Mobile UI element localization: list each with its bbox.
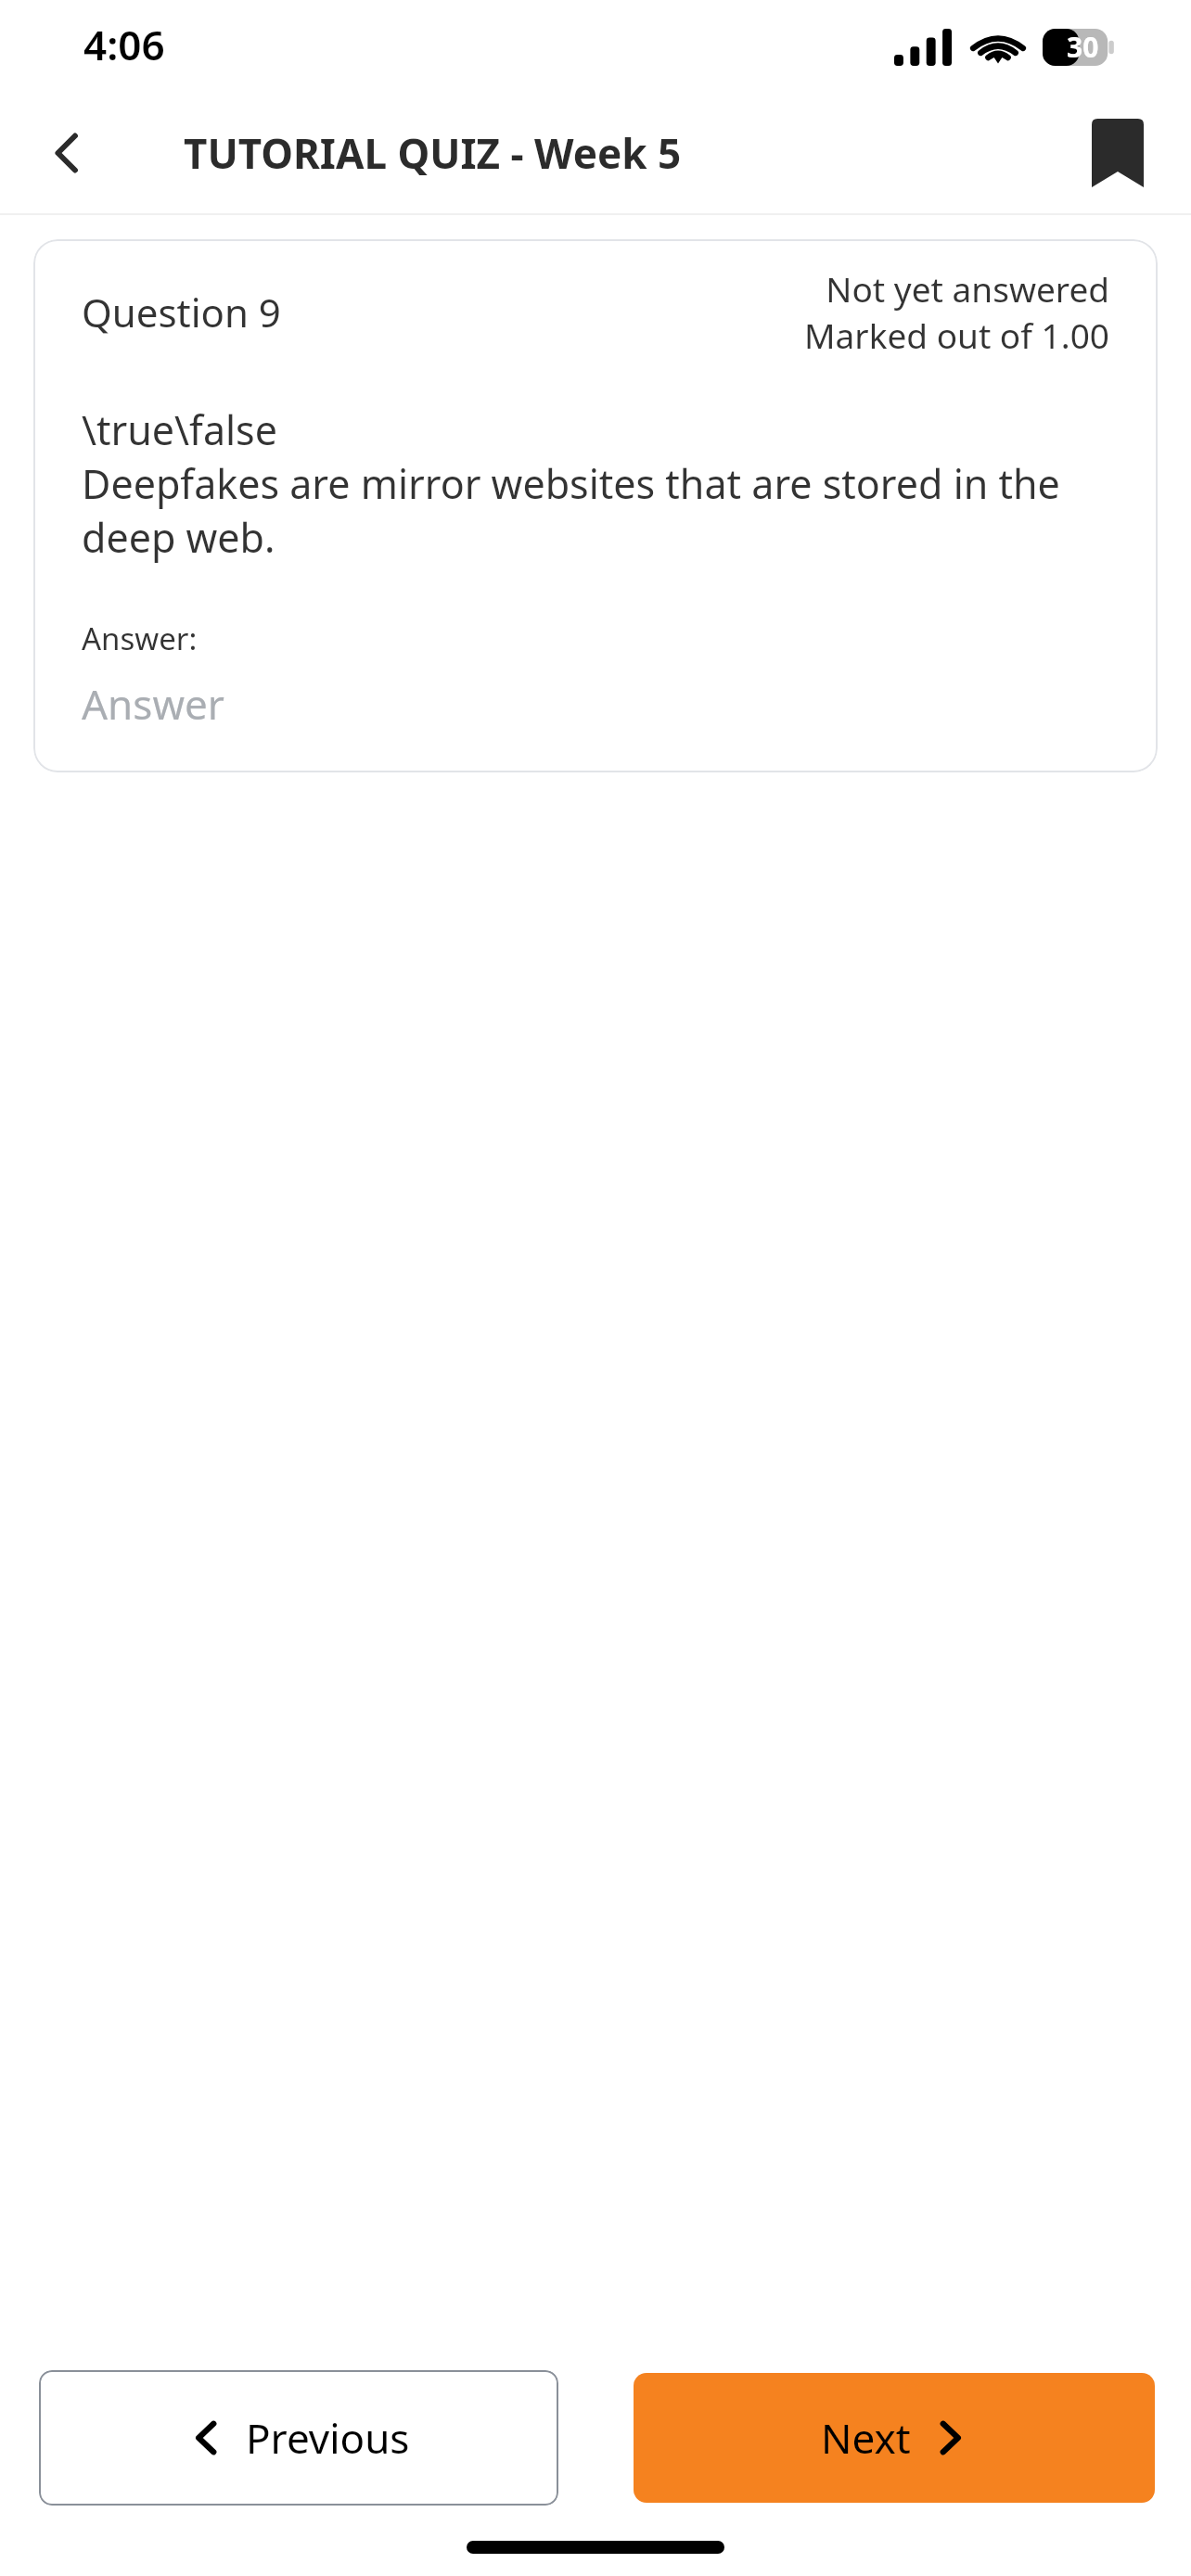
staticText: \true\false Deepfakes are mirror website…	[82, 402, 1117, 564]
staticText: Next	[821, 2410, 911, 2466]
button[interactable]: Previous	[39, 2370, 558, 2506]
staticText: TUTORIAL QUIZ - Week 5	[184, 125, 682, 181]
staticText: Not yet answered	[826, 265, 1109, 312]
staticText: Marked out of 1.00	[804, 312, 1109, 358]
staticText: Answer	[82, 676, 224, 732]
button[interactable]: Bookmark	[1069, 104, 1167, 202]
staticText: 4:06	[83, 17, 165, 72]
staticText: Question 9	[82, 286, 281, 338]
button[interactable]: Answer	[82, 676, 1117, 732]
staticText: 30	[1067, 28, 1099, 66]
staticText: Previous	[246, 2410, 410, 2466]
button[interactable]: Next	[634, 2373, 1155, 2503]
button[interactable]: Back	[19, 104, 117, 202]
staticText: Answer:	[82, 618, 198, 659]
